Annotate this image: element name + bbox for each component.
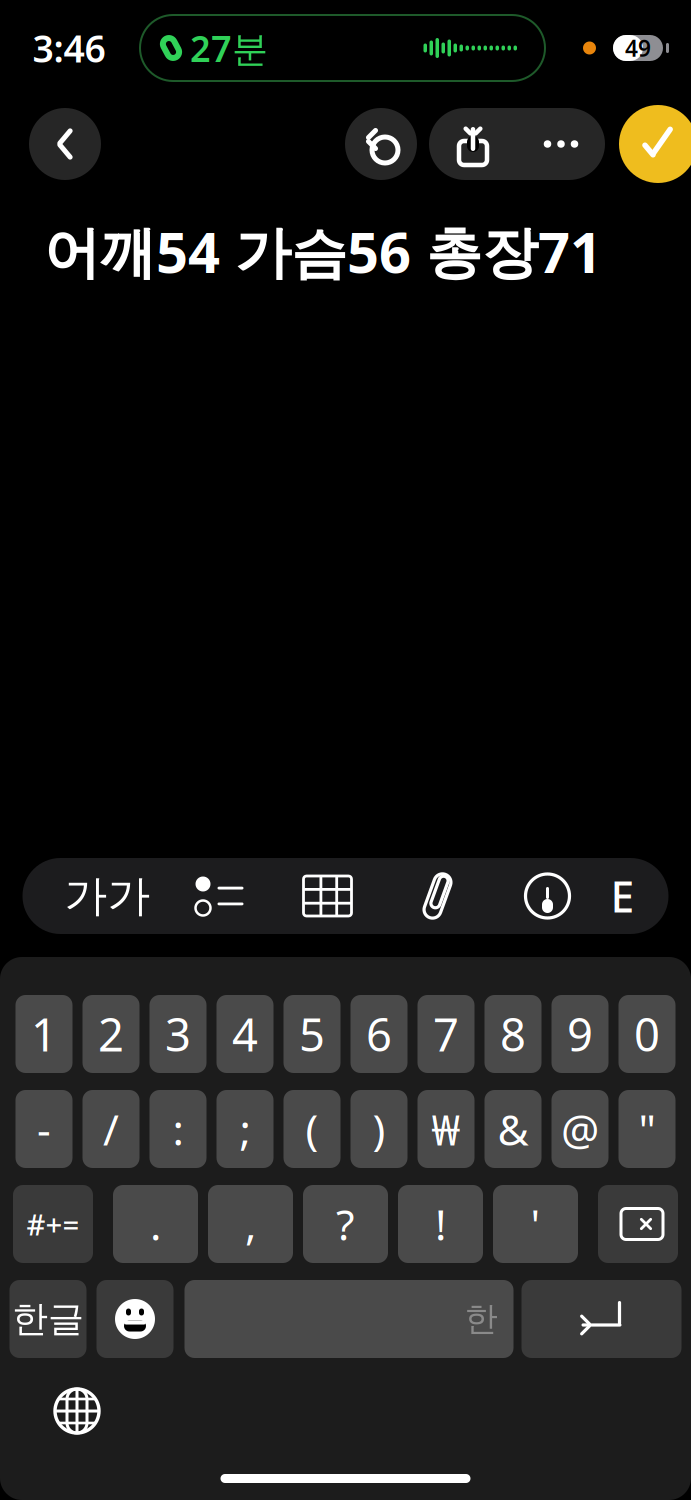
button[interactable]: Emoji [96,1280,173,1358]
button[interactable]: Delete [598,1185,678,1263]
button[interactable]: - [15,1090,72,1168]
staticText: / [103,1101,119,1157]
button[interactable]: Checklist [166,858,272,934]
button[interactable]: ; [216,1090,273,1168]
staticText: " [638,1101,655,1157]
button[interactable]: Markup [492,858,602,934]
staticText: , [245,1196,256,1252]
button[interactable]: 1 [15,995,72,1073]
button[interactable]: 7 [417,995,474,1073]
button[interactable]: More [517,108,605,180]
button[interactable]: @ [551,1090,608,1168]
button[interactable]: #+= [13,1185,93,1263]
staticText: 4 [232,1004,258,1064]
button[interactable]: Undo [345,108,417,180]
button[interactable]: 8 [484,995,541,1073]
staticText: 2 [98,1004,124,1064]
staticText: E [610,868,634,924]
button[interactable]: Table [272,858,382,934]
button[interactable]: 9 [551,995,608,1073]
staticText: 3:46 [32,23,105,73]
button[interactable]: Attach file [382,858,492,934]
button[interactable]: Next keyboard [49,1383,105,1439]
button[interactable]: Space [184,1280,513,1358]
button[interactable]: " [618,1090,675,1168]
staticText: ; [239,1101,250,1157]
button[interactable]: . [113,1185,198,1263]
button[interactable]: , [208,1185,293,1263]
staticText: 0 [634,1004,660,1064]
staticText: 1 [31,1004,57,1064]
button[interactable]: 6 [350,995,407,1073]
staticText: 49 [625,33,651,63]
button[interactable]: Back [29,108,101,180]
staticText: ? [336,1196,355,1252]
staticText: ! [435,1196,446,1252]
button[interactable]: 가가 [48,858,166,934]
button[interactable]: 5 [283,995,340,1073]
staticText: 5 [299,1004,325,1064]
staticText: ) [372,1101,385,1157]
button[interactable]: 0 [618,995,675,1073]
staticText: ( [305,1101,318,1157]
button[interactable]: 2 [82,995,139,1073]
staticText: - [37,1101,51,1157]
button[interactable]: 한글 [9,1280,86,1358]
button[interactable]: ( [283,1090,340,1168]
staticText: & [497,1101,528,1157]
button[interactable]: 4 [216,995,273,1073]
staticText: 9 [567,1004,593,1064]
button[interactable]: Done [619,105,691,183]
button[interactable]: / [82,1090,139,1168]
button[interactable]: ₩ [417,1090,474,1168]
button[interactable]: & [484,1090,541,1168]
staticText: . [150,1196,161,1252]
button[interactable]: Scan [602,858,642,934]
staticText: 3 [165,1004,191,1064]
button[interactable]: 3 [149,995,206,1073]
staticText: ₩ [431,1101,460,1157]
button[interactable]: Share [429,108,517,180]
staticText: @ [561,1101,599,1157]
button[interactable]: : [149,1090,206,1168]
button[interactable]: ' [493,1185,578,1263]
staticText: : [172,1101,183,1157]
staticText: #+= [26,1204,79,1243]
staticText: 8 [500,1004,526,1064]
staticText: ' [530,1196,540,1252]
staticText: 한 [464,1298,497,1339]
staticText: 어깨54 가슴56 총장71 [44,214,602,288]
staticText: 27분 [190,24,268,72]
staticText: 가가 [64,870,150,922]
button[interactable]: ! [398,1185,483,1263]
button[interactable]: ? [303,1185,388,1263]
staticText: 6 [366,1004,392,1064]
button[interactable]: ) [350,1090,407,1168]
staticText: 7 [433,1004,459,1064]
button[interactable]: Return [521,1280,681,1358]
staticText: 한글 [12,1297,84,1341]
